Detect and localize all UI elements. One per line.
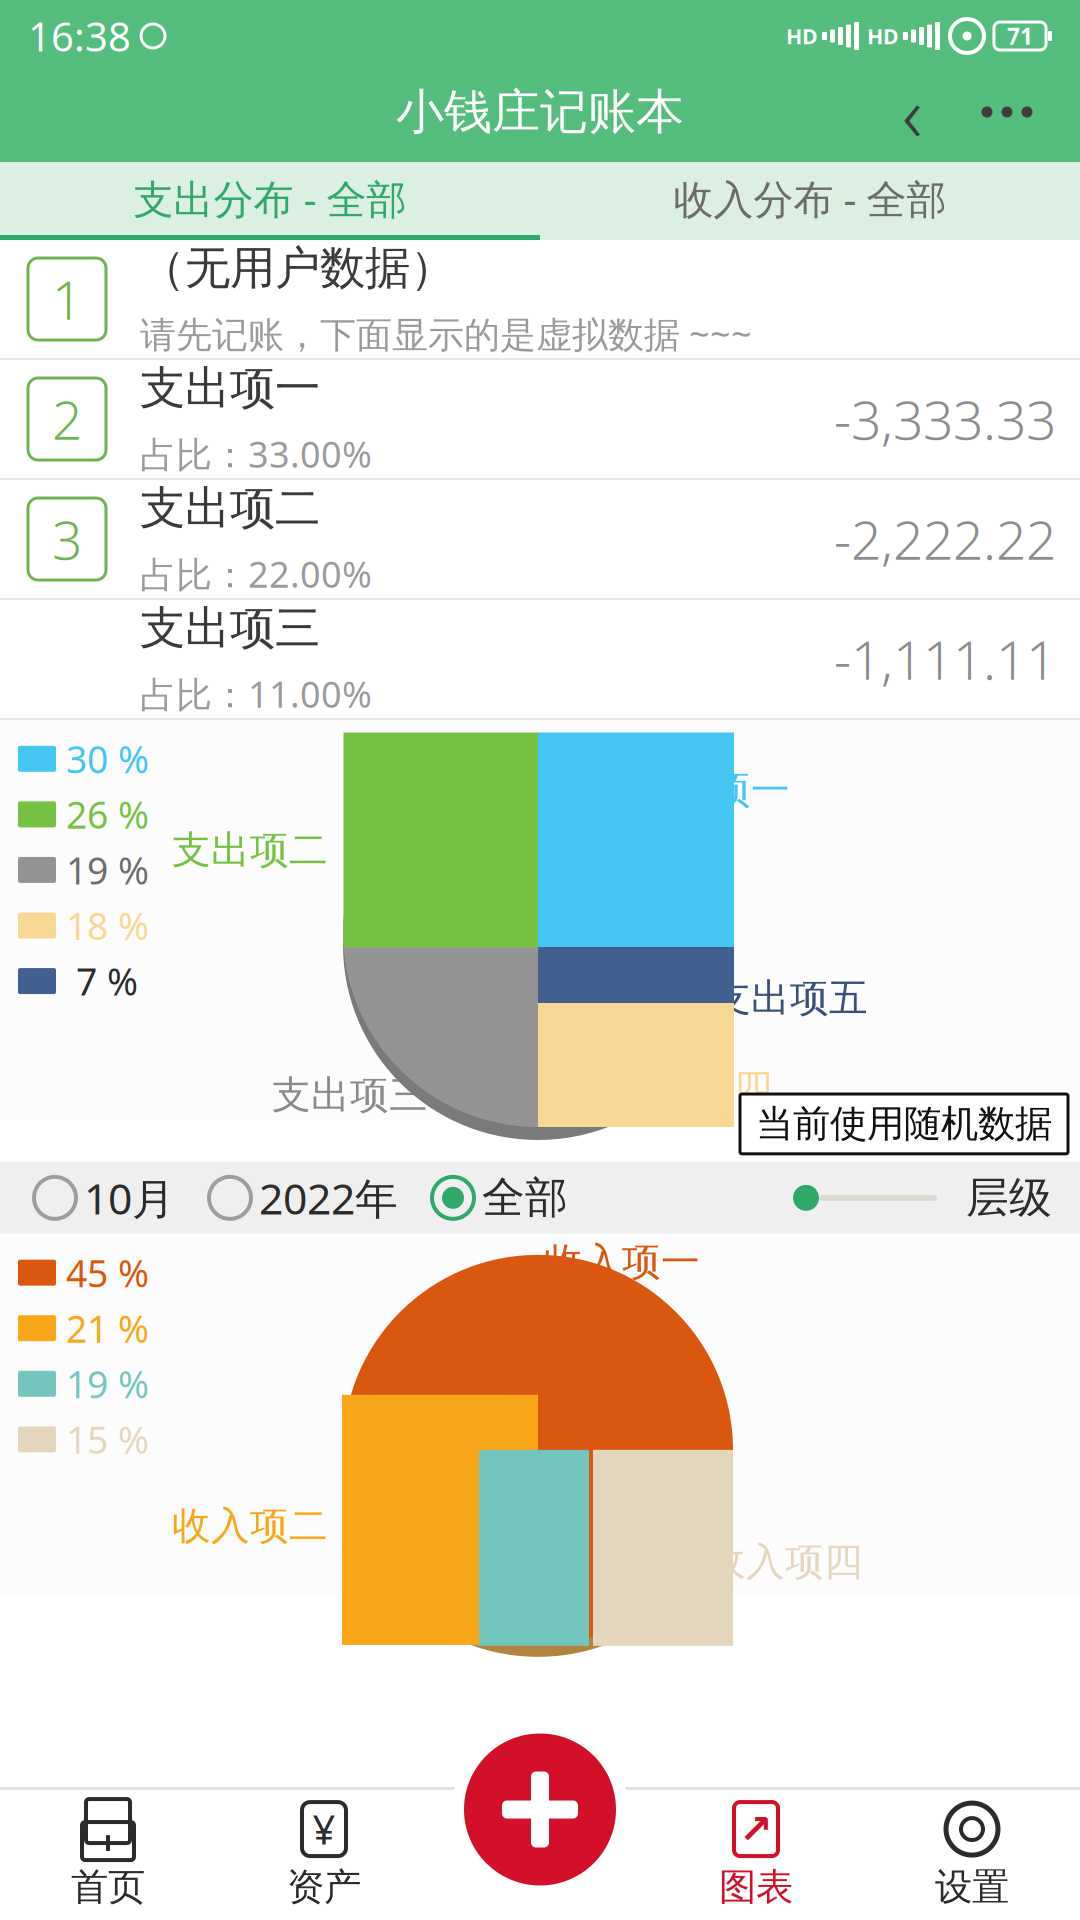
staticText: 21 % xyxy=(66,1303,149,1353)
staticText: 支出项二 xyxy=(140,480,320,536)
staticText: 占比：11.00% xyxy=(140,670,372,718)
staticText: 占比：33.00% xyxy=(140,430,372,478)
staticText: ¥ xyxy=(312,1802,335,1856)
button[interactable]: Level slider xyxy=(790,1176,940,1220)
button[interactable]: ↗ xyxy=(648,1790,864,1920)
staticText: 10月 xyxy=(84,1169,175,1226)
button[interactable]: 全部 xyxy=(432,1166,568,1230)
button[interactable]: 3 xyxy=(0,480,1080,600)
button[interactable]: 10月 xyxy=(34,1163,175,1232)
staticText: 层级 xyxy=(966,1172,1052,1224)
staticText: 收入分布 - 全部 xyxy=(673,172,946,225)
staticText: 19 % xyxy=(66,1359,149,1409)
staticText: -3,333.33 xyxy=(834,384,1056,454)
staticText: 支出项三 xyxy=(140,600,320,656)
staticText: 3 xyxy=(52,504,82,574)
button[interactable]: ¥ xyxy=(216,1790,432,1920)
staticText: 设置 xyxy=(935,1864,1009,1910)
staticText: 图表 xyxy=(719,1864,793,1910)
staticText: 小钱庄记账本 xyxy=(396,82,684,141)
staticText: 支出项五 xyxy=(712,974,868,1022)
staticText: 首页 xyxy=(71,1864,145,1910)
staticText: 支出项一 xyxy=(140,360,320,416)
staticText: 30 % xyxy=(66,734,149,784)
staticText: 2022年 xyxy=(259,1169,398,1226)
staticText: 7 % xyxy=(66,956,138,1006)
staticText: 支出项四 xyxy=(617,1064,773,1112)
button[interactable]: 支出项三 xyxy=(0,600,1080,720)
staticText: 支出项三 xyxy=(272,1071,428,1119)
staticText: ‹ xyxy=(902,61,922,163)
staticText: 45 % xyxy=(66,1248,149,1297)
staticText: -1,111.11 xyxy=(834,624,1056,694)
staticText: ↗ xyxy=(739,1806,773,1852)
staticText: -2,222.22 xyxy=(834,504,1056,574)
button[interactable]: 收入分布 - 全部 xyxy=(540,162,1080,240)
staticText: 支出分布 - 全部 xyxy=(133,172,406,225)
staticText: 1 xyxy=(52,264,82,334)
staticText: 资产 xyxy=(287,1864,361,1910)
staticText: 收入项二 xyxy=(172,1502,328,1550)
staticText: 18 % xyxy=(66,901,149,950)
staticText: 16:38 xyxy=(28,9,131,62)
staticText: 全部 xyxy=(482,1172,568,1224)
button[interactable]: 设置 xyxy=(864,1790,1080,1920)
staticText: 支出项二 xyxy=(172,826,328,874)
staticText: HD xyxy=(786,22,818,50)
button[interactable]: 首页 xyxy=(0,1790,216,1920)
button[interactable]: Back xyxy=(872,72,952,152)
button[interactable]: Add record xyxy=(445,1714,635,1904)
button[interactable]: 2 xyxy=(0,360,1080,480)
staticText: 收入项四 xyxy=(707,1538,863,1586)
button[interactable]: 支出分布 - 全部 xyxy=(0,162,540,240)
staticText: HD xyxy=(867,22,899,50)
button[interactable]: 2022年 xyxy=(209,1163,398,1232)
button[interactable]: 1 xyxy=(0,240,1080,360)
staticText: 2 xyxy=(52,384,82,454)
staticText: （无用户数据） xyxy=(140,240,455,296)
staticText: 支出项一 xyxy=(634,766,790,814)
staticText: 请先记账，下面显示的是虚拟数据 ~~~ xyxy=(140,310,752,358)
staticText: 当前使用随机数据 xyxy=(756,1101,1052,1147)
staticText: 15 % xyxy=(66,1415,149,1464)
staticText: 26 % xyxy=(66,790,149,839)
staticText: 19 % xyxy=(66,845,149,895)
staticText: 收入项一 xyxy=(544,1238,700,1286)
staticText: 71 xyxy=(1007,21,1033,51)
button[interactable]: More options xyxy=(952,72,1062,152)
staticText: 占比：22.00% xyxy=(140,550,372,598)
